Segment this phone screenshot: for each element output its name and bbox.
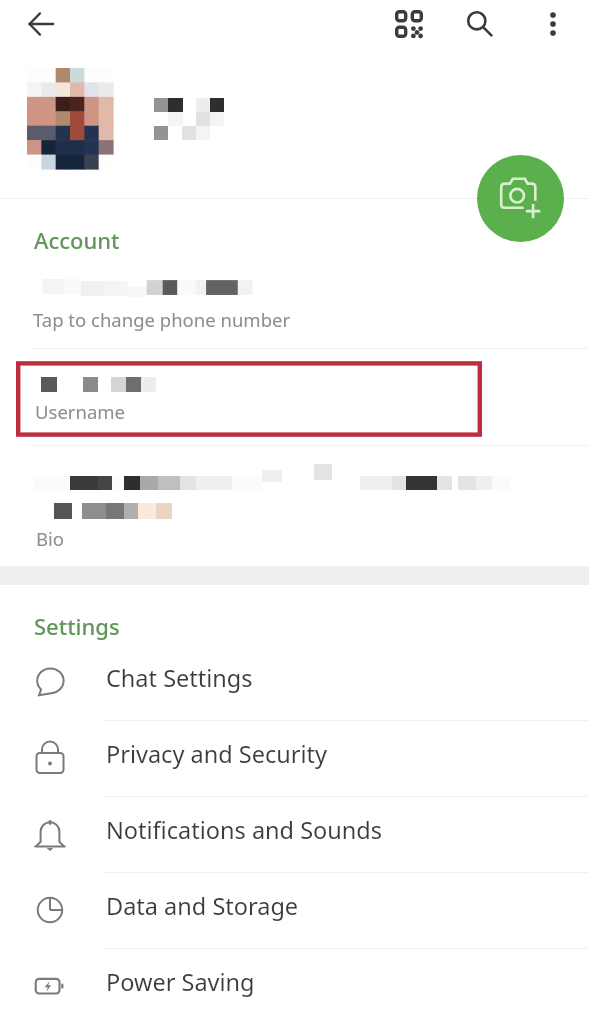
staticText: Bio <box>36 526 64 551</box>
button[interactable]: Back <box>19 2 63 46</box>
staticText: Privacy and Security <box>106 738 327 770</box>
staticText: Tap to change phone number <box>33 307 291 332</box>
button[interactable]: Power Saving <box>0 948 589 1024</box>
button[interactable]: Chat Settings <box>0 644 589 720</box>
button[interactable]: Data and Storage <box>0 872 589 948</box>
staticText: Data and Storage <box>106 890 299 922</box>
button[interactable]: Search <box>458 2 502 46</box>
button[interactable]: Change profile photo <box>477 155 564 242</box>
staticText: Settings <box>34 611 120 641</box>
button[interactable]: Bio <box>0 446 589 566</box>
staticText: Power Saving <box>106 966 255 998</box>
staticText: Chat Settings <box>106 662 253 694</box>
button[interactable]: Privacy and Security <box>0 720 589 796</box>
button[interactable] <box>0 48 589 198</box>
button[interactable]: QR code <box>387 2 431 46</box>
button[interactable]: Username <box>0 349 589 445</box>
staticText: Username <box>35 399 126 424</box>
button[interactable]: Notifications and Sounds <box>0 796 589 872</box>
staticText: Account <box>34 225 120 255</box>
button[interactable]: More options <box>531 2 575 46</box>
button[interactable]: Tap to change phone number <box>0 258 589 348</box>
staticText: Notifications and Sounds <box>106 814 383 846</box>
